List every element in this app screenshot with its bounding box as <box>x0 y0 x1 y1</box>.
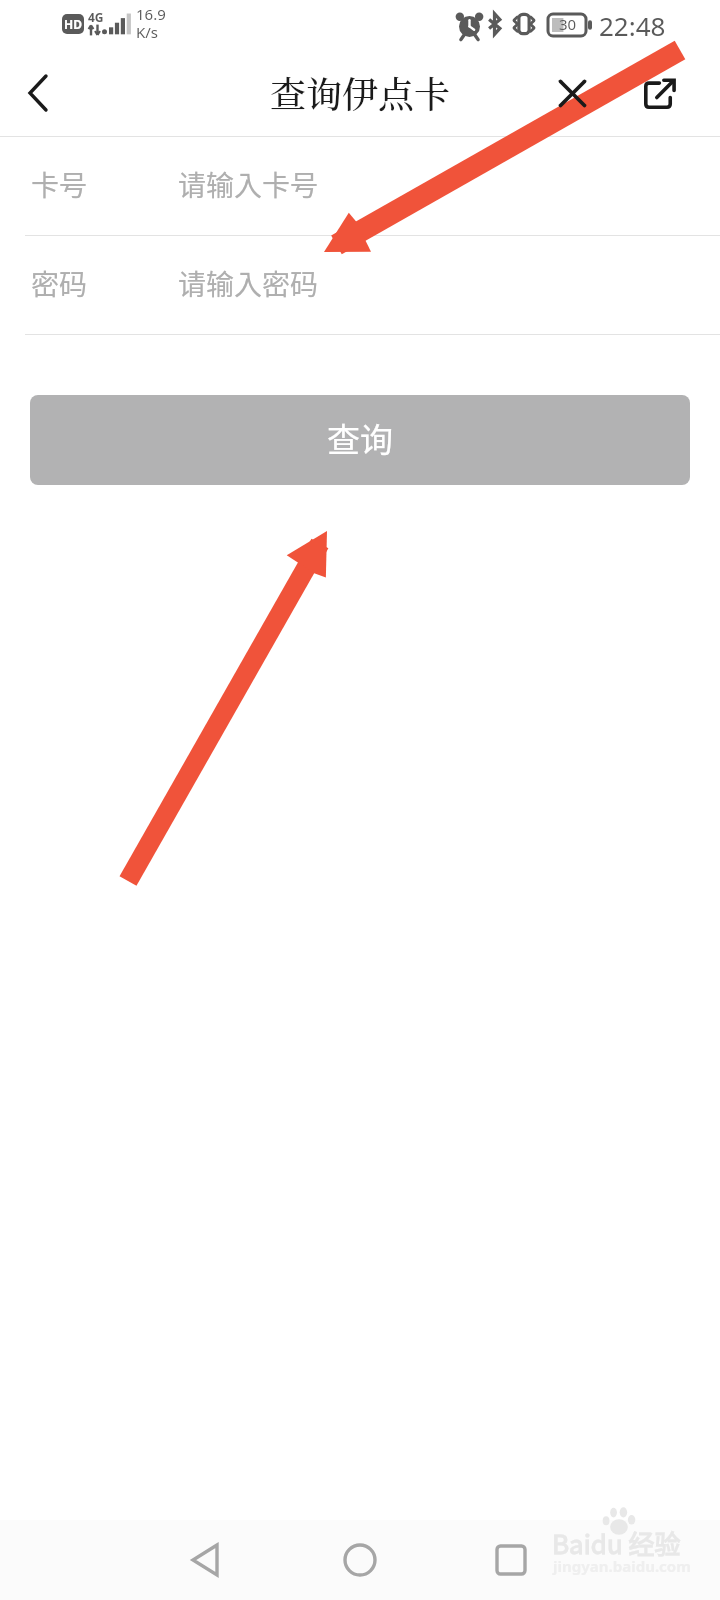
button[interactable]: Back <box>145 1520 265 1600</box>
staticText: 查询伊点卡 <box>270 67 451 119</box>
button[interactable]: Close <box>540 50 604 136</box>
staticText: 卡号 <box>31 164 178 205</box>
staticText: 请输入密码 <box>178 263 319 304</box>
button[interactable]: Home <box>300 1520 420 1600</box>
staticText: HD <box>64 16 82 32</box>
button[interactable]: 卡号 <box>0 137 720 235</box>
staticText: 4G <box>88 9 104 25</box>
button[interactable]: Recents <box>451 1520 571 1600</box>
staticText: 30 <box>559 14 577 34</box>
button[interactable]: 查询 <box>30 395 690 485</box>
staticText: 密码 <box>31 263 178 304</box>
button[interactable]: Open in browser <box>628 50 692 136</box>
staticText: 22:48 <box>599 8 666 43</box>
staticText: jingyan.baidu.com <box>553 1556 691 1576</box>
staticText: Baidu 经验 <box>552 1524 681 1562</box>
staticText: 查询 <box>327 414 393 462</box>
staticText: 请输入卡号 <box>178 164 319 205</box>
staticText: 16.9 K/s <box>136 4 166 43</box>
button[interactable]: Back <box>6 50 70 136</box>
button[interactable]: 密码 <box>0 236 720 334</box>
